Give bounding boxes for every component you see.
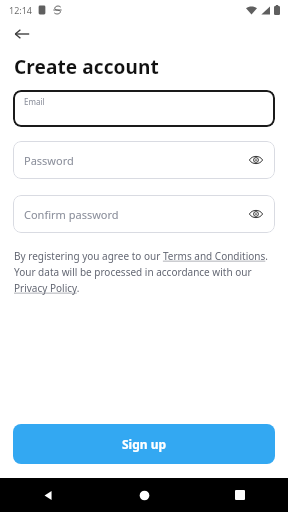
button[interactable]: Sign up xyxy=(13,424,275,464)
button[interactable]: Password xyxy=(13,141,275,179)
button[interactable]: Privacy Policy. xyxy=(14,281,80,295)
button[interactable]: Show password xyxy=(243,201,269,227)
button[interactable]: Back xyxy=(8,20,36,48)
button[interactable]: Show password xyxy=(243,147,269,173)
staticText: Confirm password xyxy=(24,207,119,222)
staticText: 12:14 xyxy=(9,4,33,16)
staticText: Create account xyxy=(14,54,159,80)
staticText: Password xyxy=(24,153,74,168)
staticText: Email xyxy=(24,96,45,107)
button[interactable]: Recent apps xyxy=(192,478,288,512)
button[interactable]: By registering you agree to our Terms an… xyxy=(14,249,274,263)
button[interactable]: Email xyxy=(13,90,275,127)
button[interactable]: Back xyxy=(0,478,96,512)
staticText: Sign up xyxy=(122,436,167,452)
button[interactable]: Confirm password xyxy=(13,195,275,233)
staticText: Your data will be processed in accordanc… xyxy=(14,265,252,279)
button[interactable]: Home xyxy=(96,478,192,512)
